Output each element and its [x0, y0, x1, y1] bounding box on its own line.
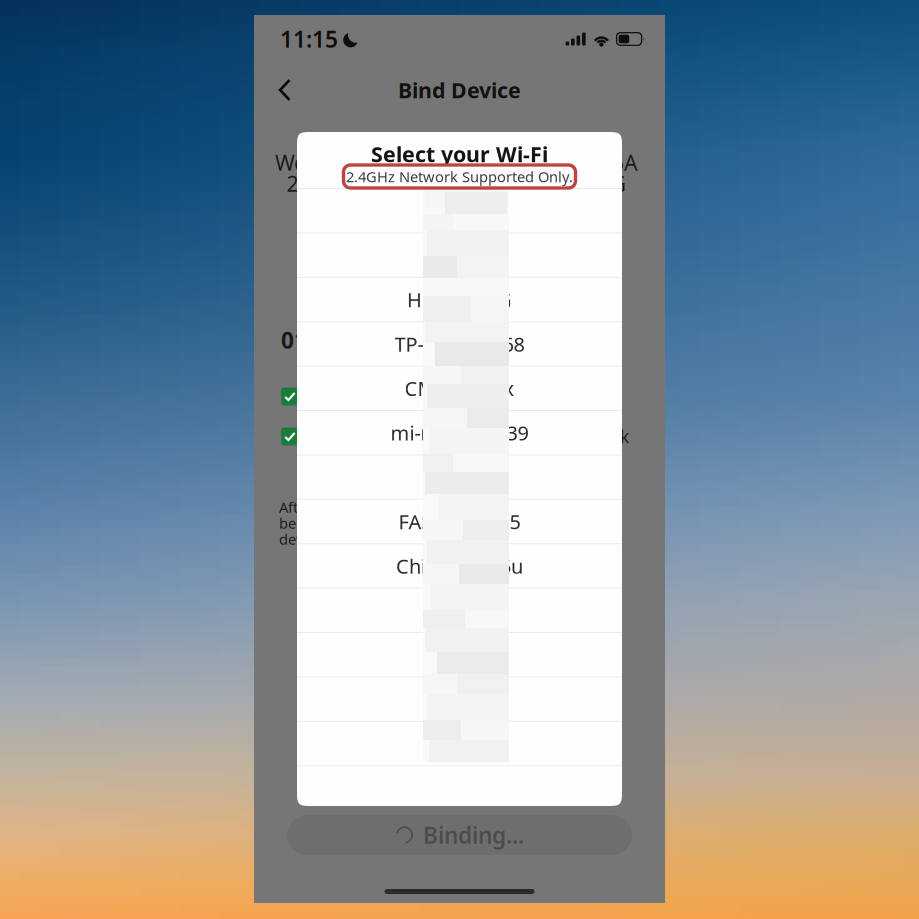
staticText: CMCC-8N9x [404, 375, 514, 402]
button[interactable]: mi-router-1739 [297, 411, 622, 454]
button[interactable]: CMCC-8N9x [297, 367, 622, 410]
button[interactable] [297, 233, 622, 277]
staticText: Home-2.4G [407, 286, 512, 313]
staticText: 2B0C-Home-Router-Network-2.4G [286, 169, 626, 198]
staticText: Workshop-2.4GHz-Wi-Fi-Network-5A [275, 148, 638, 177]
staticText: Select your Wi-Fi [371, 140, 548, 168]
button[interactable] [297, 189, 622, 232]
staticText: TP-LINK_2D68 [394, 331, 524, 357]
button[interactable] [297, 455, 622, 499]
button[interactable]: ChinaNet-h5u [297, 544, 622, 588]
staticText: 01 : 58 [281, 325, 351, 355]
button[interactable] [297, 677, 622, 721]
staticText: ChinaNet-h5u [396, 553, 523, 579]
button[interactable] [297, 855, 622, 898]
staticText: device list will refresh. [279, 529, 431, 549]
staticText: After the device is bound it will [279, 497, 490, 517]
button[interactable]: TP-LINK_2D68 [297, 322, 622, 366]
staticText: Connected to the home router network [308, 425, 629, 448]
staticText: Device powered on successfully [308, 385, 565, 408]
staticText: 2.4GHz Network Supported Only. [346, 167, 573, 186]
button[interactable] [297, 589, 622, 632]
staticText: mi-router-1739 [390, 419, 528, 446]
button[interactable] [297, 633, 622, 676]
button[interactable]: FAST_Home5 [297, 500, 622, 543]
button[interactable]: Back [264, 69, 306, 111]
staticText: FAST_Home5 [398, 508, 520, 535]
button[interactable]: Binding... [287, 815, 632, 855]
staticText: be added to your home and the [279, 513, 496, 533]
staticText: Bind Device [398, 76, 521, 104]
staticText: Binding... [423, 820, 524, 850]
button[interactable] [297, 766, 622, 810]
button[interactable]: Home-2.4G [297, 278, 622, 321]
button[interactable] [297, 811, 622, 854]
button[interactable] [297, 722, 622, 765]
staticText: 11:15 [280, 24, 338, 54]
